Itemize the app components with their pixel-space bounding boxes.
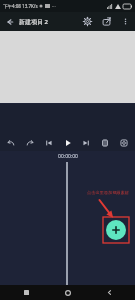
button[interactable]: Play: [60, 135, 76, 151]
button[interactable]: Undo: [3, 135, 19, 151]
button[interactable]: Home: [53, 285, 83, 300]
staticText: 00:00:00: [58, 153, 78, 160]
button[interactable]: Back: [0, 12, 19, 31]
button[interactable]: More options: [116, 12, 135, 31]
button[interactable]: Recent apps: [11, 285, 41, 300]
staticText: ···: [52, 3, 56, 9]
button[interactable]: Full screen: [116, 135, 132, 151]
staticText: 下午4:08 13.7K/s: [3, 3, 38, 9]
button[interactable]: Previous frame: [41, 135, 57, 151]
button[interactable]: Settings: [78, 12, 97, 31]
button[interactable]: Back: [94, 285, 124, 300]
button[interactable]: Redo: [22, 135, 38, 151]
button[interactable]: Save: [97, 135, 113, 151]
button[interactable]: Export: [97, 12, 116, 31]
button[interactable]: Next frame: [78, 135, 94, 151]
staticText: 新建项目 2: [19, 18, 48, 26]
staticText: 点击这里添加视频素材: [87, 190, 129, 195]
button[interactable]: Add media: [106, 220, 126, 240]
